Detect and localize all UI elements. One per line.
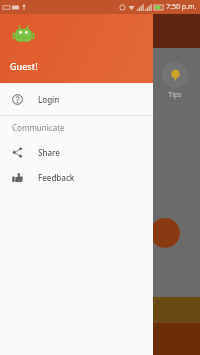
staticText: Guest! xyxy=(10,60,38,72)
staticText: 7:50 p.m. xyxy=(166,2,197,12)
staticText: Feedback xyxy=(38,172,75,183)
staticText: Tips xyxy=(168,90,182,100)
staticText: Share xyxy=(38,147,60,158)
button[interactable]: Action xyxy=(150,218,180,248)
button[interactable]: Share xyxy=(0,140,153,165)
button[interactable]: Login xyxy=(0,87,153,112)
button[interactable]: Guest! xyxy=(0,14,153,83)
staticText: Login xyxy=(38,94,60,105)
button[interactable]: Tips xyxy=(162,62,188,100)
staticText: Communicate xyxy=(12,122,65,133)
button[interactable]: Feedback xyxy=(0,165,153,190)
